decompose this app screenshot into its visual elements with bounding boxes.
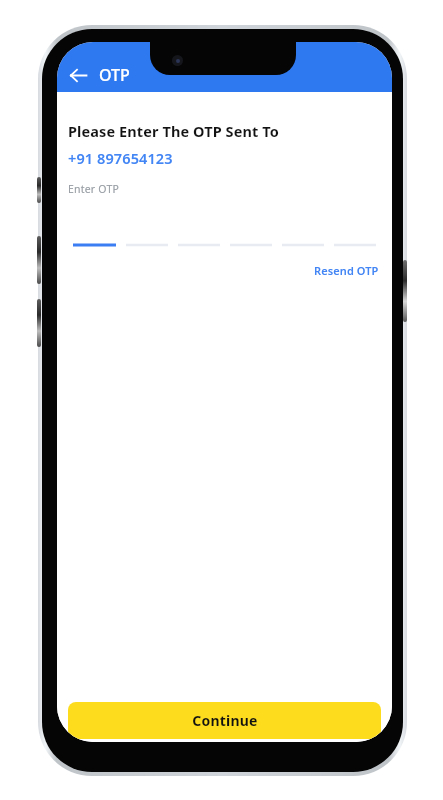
button[interactable]: Resend OTP: [312, 261, 381, 280]
staticText: Enter OTP: [68, 182, 119, 196]
button[interactable]: [329, 236, 381, 250]
button[interactable]: [121, 236, 173, 250]
button[interactable]: [225, 236, 277, 250]
staticText: Resend OTP: [314, 263, 379, 278]
staticText: +91 897654123: [68, 148, 173, 168]
staticText: OTP: [99, 64, 130, 86]
button[interactable]: Continue: [68, 702, 381, 739]
button[interactable]: [173, 236, 225, 250]
staticText: Continue: [192, 711, 258, 730]
button[interactable]: Back: [62, 59, 94, 91]
button[interactable]: [68, 236, 121, 250]
button[interactable]: [277, 236, 329, 250]
staticText: Please Enter The OTP Sent To: [68, 121, 279, 141]
